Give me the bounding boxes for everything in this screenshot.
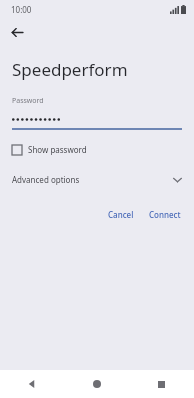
button[interactable]	[12, 114, 182, 125]
staticText: Show password	[28, 144, 87, 155]
staticText: Password	[12, 96, 44, 106]
staticText: Connect	[149, 209, 181, 220]
staticText: 10:00	[11, 4, 32, 15]
staticText: Advanced options	[12, 174, 80, 185]
button[interactable]: Back	[6, 21, 28, 43]
button[interactable]: Show password	[0, 140, 194, 159]
button[interactable]: Home	[64, 370, 129, 398]
button[interactable]: Cancel	[103, 206, 139, 223]
button[interactable]: Advanced options	[0, 169, 194, 190]
button[interactable]: Recent apps	[129, 370, 194, 398]
staticText: Speedperform	[12, 58, 128, 81]
button[interactable]: Back	[0, 370, 64, 398]
button[interactable]: Connect	[144, 206, 186, 223]
staticText: Cancel	[108, 209, 134, 220]
